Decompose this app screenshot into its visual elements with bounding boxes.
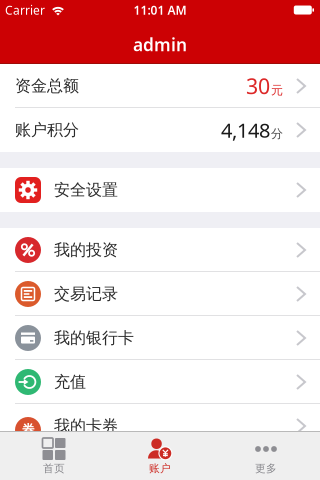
staticText: 更多 <box>255 462 277 475</box>
staticText: 首页 <box>43 462 65 475</box>
button[interactable]: 账户 Account <box>107 431 213 480</box>
staticText: 账户 <box>149 462 171 475</box>
button[interactable]: 安全设置 <box>0 168 320 212</box>
button[interactable]: 充值 <box>0 360 320 404</box>
button[interactable]: 更多 More <box>213 431 319 480</box>
button[interactable]: 我的银行卡 <box>0 316 320 360</box>
staticText: admin <box>133 33 187 56</box>
button[interactable]: 资金总额 <box>0 64 320 108</box>
button[interactable]: 我的投资 <box>0 228 320 272</box>
staticText: 我的投资 <box>54 240 118 260</box>
staticText: 账户积分 <box>15 120 79 140</box>
staticText: 券 <box>21 422 34 438</box>
staticText: 4,148 <box>221 117 270 143</box>
button[interactable]: 交易记录 <box>0 272 320 316</box>
staticText: 安全设置 <box>54 180 118 200</box>
staticText: 分 <box>271 126 283 141</box>
staticText: 11:01 AM <box>133 2 186 18</box>
staticText: Carrier <box>5 2 45 18</box>
staticText: 30 <box>246 72 270 100</box>
staticText: 资金总额 <box>15 76 79 96</box>
staticText: 交易记录 <box>54 284 118 304</box>
staticText: 充值 <box>54 372 86 392</box>
staticText: 元 <box>271 83 283 98</box>
staticText: 我的卡券 <box>54 416 118 436</box>
staticText: 我的银行卡 <box>54 328 134 348</box>
button[interactable]: 首页 Home <box>1 431 107 480</box>
button[interactable]: 账户积分 <box>0 108 320 152</box>
button[interactable]: 券 <box>0 404 320 448</box>
